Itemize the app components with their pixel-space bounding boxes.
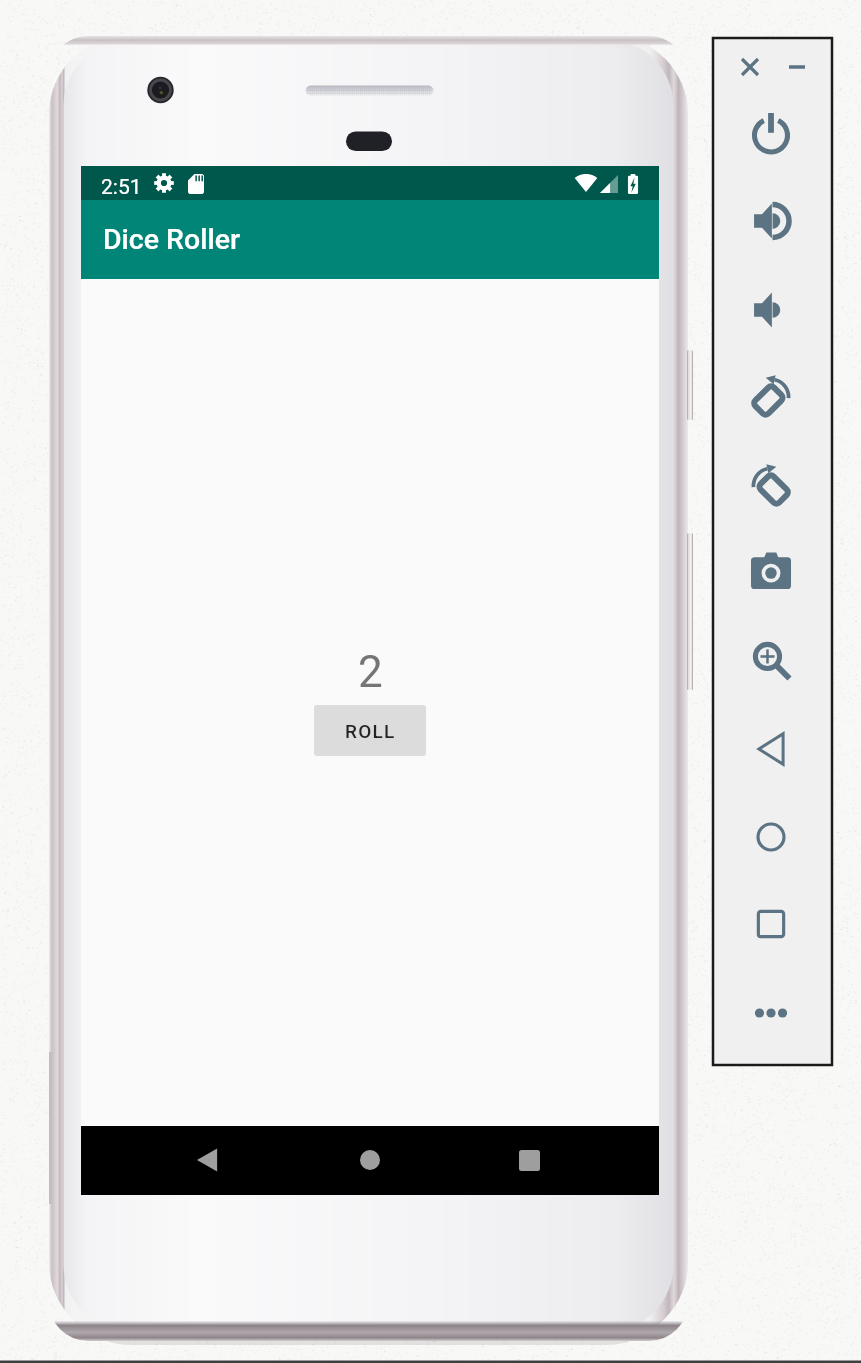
button[interactable]: Back — [742, 720, 800, 778]
staticText: Dice Roller — [103, 223, 241, 256]
button[interactable]: Home — [742, 808, 800, 866]
staticText: 2:51 — [101, 175, 142, 200]
button[interactable]: Overview — [742, 895, 800, 953]
button[interactable]: Volume up — [742, 192, 800, 250]
button[interactable]: Close — [735, 52, 765, 82]
button[interactable]: ROLL — [314, 705, 426, 756]
staticText: ROLL — [345, 720, 396, 742]
button[interactable]: Volume down — [742, 281, 800, 339]
button[interactable]: Minimize — [782, 52, 812, 82]
button[interactable]: More — [742, 984, 800, 1042]
button[interactable]: Zoom in — [742, 631, 800, 689]
button[interactable]: Recents — [495, 1126, 563, 1194]
staticText: 2 — [358, 646, 383, 698]
button[interactable]: Home — [336, 1126, 404, 1194]
button[interactable]: Rotate right — [742, 368, 800, 426]
button[interactable]: Screenshot — [742, 542, 800, 600]
button[interactable]: Back — [174, 1126, 242, 1194]
button[interactable]: Rotate left — [742, 457, 800, 515]
button[interactable]: Power — [742, 104, 800, 162]
